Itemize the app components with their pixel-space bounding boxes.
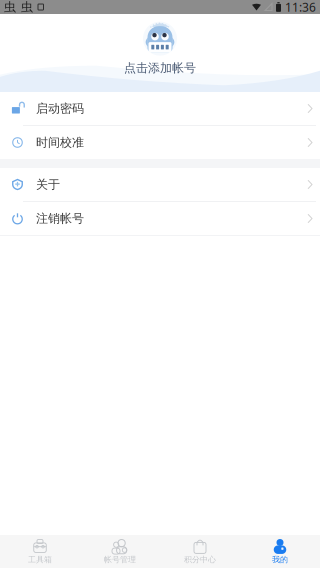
button[interactable]: 积分中心	[160, 535, 240, 568]
staticText: 注销帐号	[36, 211, 84, 226]
staticText: 积分中心	[184, 555, 216, 564]
staticText: 时间校准	[36, 135, 84, 150]
button[interactable]: 注销帐号	[0, 202, 320, 235]
staticText: 虫	[4, 0, 16, 14]
staticText: 点击添加帐号	[124, 61, 196, 75]
staticText: 我的	[272, 555, 288, 564]
staticText: 帐号管理	[104, 555, 136, 564]
button[interactable]: 点击添加帐号	[0, 14, 320, 92]
button[interactable]: 时间校准	[0, 126, 320, 159]
staticText: 虫	[21, 0, 33, 14]
button[interactable]: 启动密码	[0, 92, 320, 125]
button[interactable]: 关于	[0, 168, 320, 201]
staticText: 关于	[36, 177, 60, 192]
staticText: 11:36	[285, 0, 316, 15]
staticText: 工具箱	[28, 555, 52, 564]
staticText: 启动密码	[36, 101, 84, 116]
button[interactable]: 我的	[240, 535, 320, 568]
button[interactable]: 工具箱	[0, 535, 80, 568]
button[interactable]: 帐号管理	[80, 535, 160, 568]
